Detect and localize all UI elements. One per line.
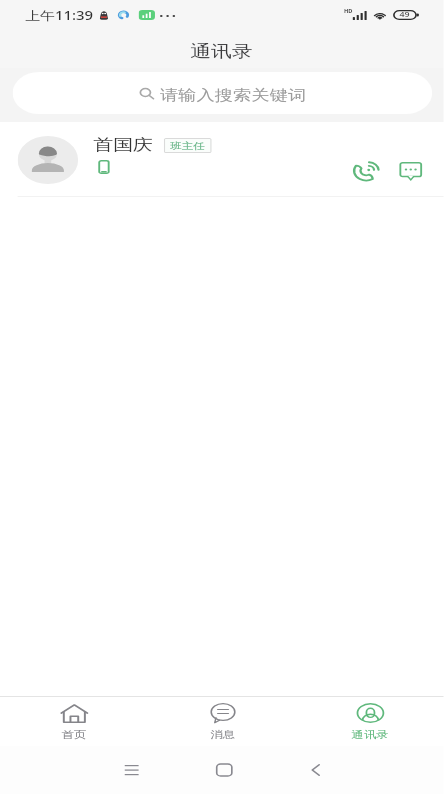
staticText: 班主任 [170, 140, 205, 152]
button[interactable]: 通讯录 [296, 697, 443, 746]
button[interactable]: 最近任务 [112, 755, 150, 785]
button[interactable]: 首国庆 [0, 122, 443, 197]
staticText: 消息 [210, 729, 236, 741]
staticText: 首页 [62, 729, 87, 741]
button[interactable]: 主屏幕 [205, 755, 243, 785]
staticText: 首国庆 [93, 135, 154, 155]
staticText: 上午11:39 [25, 7, 93, 23]
button[interactable]: 首页 [0, 697, 149, 746]
staticText: 通讯录 [190, 41, 253, 62]
button[interactable]: 拨打电话 [350, 158, 383, 184]
staticText: 请输入搜索关键词 [160, 86, 306, 104]
button[interactable]: 请输入搜索关键词 [13, 72, 432, 114]
button[interactable]: 消息 [149, 697, 296, 746]
staticText: 通讯录 [351, 729, 389, 741]
button[interactable]: 返回 [296, 755, 334, 785]
staticText: HD [344, 8, 353, 14]
button[interactable]: 发送消息 [394, 158, 427, 184]
staticText: 49 [399, 10, 411, 20]
